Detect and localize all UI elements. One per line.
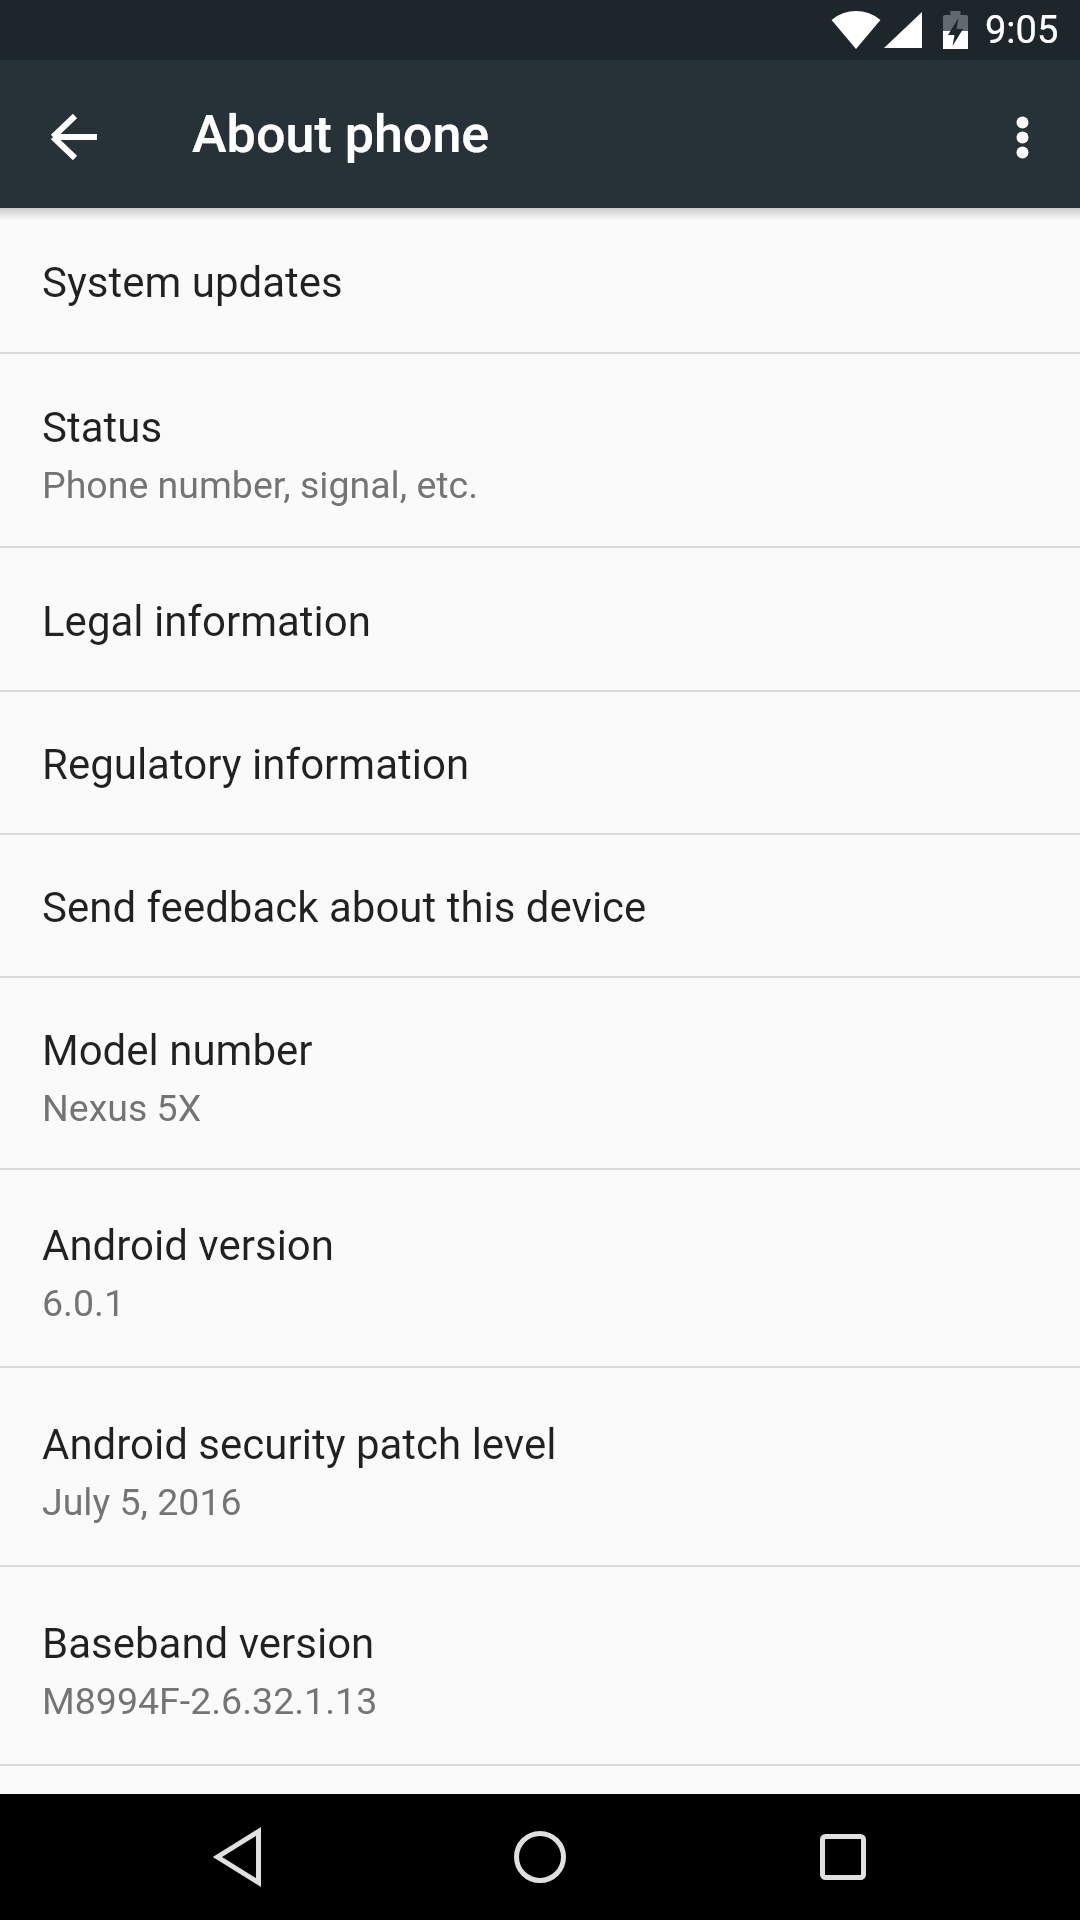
staticText: 6.0.1 xyxy=(42,1281,126,1325)
button[interactable] xyxy=(190,1794,286,1920)
staticText: Nexus 5X xyxy=(42,1086,202,1130)
button[interactable]: Model number xyxy=(0,978,1080,1170)
staticText: Legal information xyxy=(42,597,371,646)
button[interactable] xyxy=(795,1794,891,1920)
staticText: 9:05 xyxy=(985,8,1059,53)
staticText: About phone xyxy=(192,104,490,165)
staticText: July 5, 2016 xyxy=(42,1480,242,1524)
staticText: System updates xyxy=(42,258,343,307)
staticText: Baseband version xyxy=(42,1619,375,1668)
staticText: Model number xyxy=(42,1026,313,1075)
button[interactable]: Status xyxy=(0,354,1080,548)
staticText: Regulatory information xyxy=(42,740,470,789)
button[interactable] xyxy=(974,86,1070,182)
button[interactable]: Android version xyxy=(0,1170,1080,1368)
button[interactable]: System updates xyxy=(0,208,1080,354)
button[interactable]: Legal information xyxy=(0,548,1080,692)
staticText: Status xyxy=(42,403,163,452)
button[interactable] xyxy=(492,1794,588,1920)
button[interactable]: Send feedback about this device xyxy=(0,835,1080,978)
staticText: Send feedback about this device xyxy=(42,883,647,932)
staticText: Phone number, signal, etc. xyxy=(42,463,479,507)
button[interactable]: Regulatory information xyxy=(0,692,1080,835)
staticText: Android version xyxy=(42,1221,334,1270)
staticText: Android security patch level xyxy=(42,1420,557,1469)
button[interactable]: Baseband version xyxy=(0,1567,1080,1766)
staticText: M8994F-2.6.32.1.13 xyxy=(42,1679,378,1723)
button[interactable]: Android security patch level xyxy=(0,1368,1080,1567)
button[interactable] xyxy=(27,86,123,182)
